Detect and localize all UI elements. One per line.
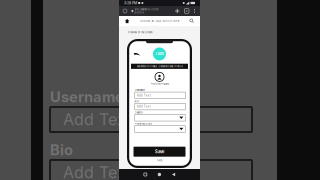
staticText: Add Text bbox=[63, 110, 131, 129]
staticText: Save bbox=[155, 149, 164, 154]
staticText: Bio bbox=[50, 141, 73, 159]
button[interactable]: Home bbox=[125, 19, 129, 23]
button[interactable]: More options bbox=[193, 8, 196, 13]
staticText: Add Text bbox=[137, 94, 151, 97]
staticText: Preferred Style bbox=[135, 122, 152, 125]
button[interactable]: Logo bbox=[153, 47, 166, 60]
button[interactable]: Back bbox=[172, 173, 175, 176]
staticText: Username bbox=[50, 88, 124, 106]
staticText: LOGO bbox=[155, 52, 163, 56]
button[interactable]: Bio bbox=[135, 103, 186, 110]
staticText: Preview of the Screen bbox=[128, 31, 152, 34]
staticText: Welcome to Create, Complete your Profile bbox=[136, 65, 182, 68]
staticText: Skip bbox=[157, 159, 162, 162]
staticText: Choose an App Which Best bbox=[139, 19, 179, 23]
staticText: Username bbox=[135, 89, 145, 92]
staticText: Add Text bbox=[137, 105, 151, 108]
staticText: Bio bbox=[135, 100, 139, 103]
staticText: Profile Picture bbox=[150, 82, 168, 85]
button[interactable]: Preferred Style bbox=[135, 126, 186, 132]
button[interactable]: Profile Picture bbox=[150, 72, 168, 85]
button[interactable]: Tabs bbox=[184, 9, 189, 13]
button[interactable]: Save bbox=[133, 147, 185, 157]
button[interactable]: Country bbox=[135, 114, 186, 121]
staticText: 2 bbox=[186, 9, 188, 13]
staticText: Country bbox=[135, 111, 143, 114]
button[interactable]: Search bbox=[190, 19, 194, 23]
button[interactable]: New tab bbox=[175, 9, 179, 13]
staticText: Add Text bbox=[63, 163, 131, 180]
button[interactable]: Home bbox=[158, 173, 161, 176]
button[interactable]: Reload bbox=[123, 9, 127, 13]
button[interactable]: Back bbox=[134, 52, 140, 56]
staticText: site.example.com/profile bbox=[134, 8, 158, 14]
button[interactable]: Recent apps bbox=[144, 173, 147, 176]
button[interactable]: Username bbox=[135, 92, 186, 99]
staticText: 3:28 PM bbox=[124, 1, 137, 5]
button[interactable]: Skip bbox=[153, 157, 166, 162]
